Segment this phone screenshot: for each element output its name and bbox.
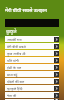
button[interactable]: कुछ अजीब सी (5, 50, 59, 56)
staticText: हँसी के पल (7, 65, 54, 70)
staticText: चुटकुले (6, 29, 17, 34)
button[interactable]: Open (54, 51, 59, 56)
button[interactable]: Open (54, 44, 59, 49)
staticText: कुछ अजीब सी (7, 51, 54, 56)
button[interactable]: मेरी बीवी सबसे उलझन (0, 6, 64, 15)
button[interactable]: हँसी के पल (5, 64, 59, 70)
staticText: पति पत्नी (7, 58, 54, 63)
button[interactable]: डॉक्टर साहब (5, 99, 59, 100)
staticText: मेरी बीवी सबसे (7, 44, 54, 49)
button[interactable]: Open (54, 93, 59, 98)
staticText: नेता जी (7, 93, 54, 98)
button[interactable]: दोस्तों की बात (5, 78, 59, 84)
button[interactable]: Open (54, 58, 59, 63)
button[interactable]: पति पत्नी (5, 57, 59, 63)
staticText: मेरी बीवी सबसे उलझन (5, 7, 47, 14)
button[interactable]: मेरी बीवी सबसे (5, 43, 59, 49)
button[interactable]: नेता जी (5, 92, 59, 98)
staticText: दोस्तों की बात (7, 79, 54, 84)
button[interactable]: Open (54, 79, 59, 84)
button[interactable]: चुटकुले हिंदी (5, 85, 59, 91)
button[interactable]: आपकी राय (5, 36, 59, 42)
button[interactable]: Open (54, 37, 59, 42)
button[interactable]: Open (54, 86, 59, 91)
button[interactable]: Open (54, 99, 59, 100)
button[interactable]: Open (54, 72, 59, 77)
staticText: सास बहू (7, 72, 54, 77)
button[interactable]: Open (54, 65, 59, 70)
button[interactable]: सास बहू (5, 71, 59, 77)
staticText: चुटकुले हिंदी (7, 86, 54, 91)
staticText: आपकी राय (7, 37, 54, 42)
